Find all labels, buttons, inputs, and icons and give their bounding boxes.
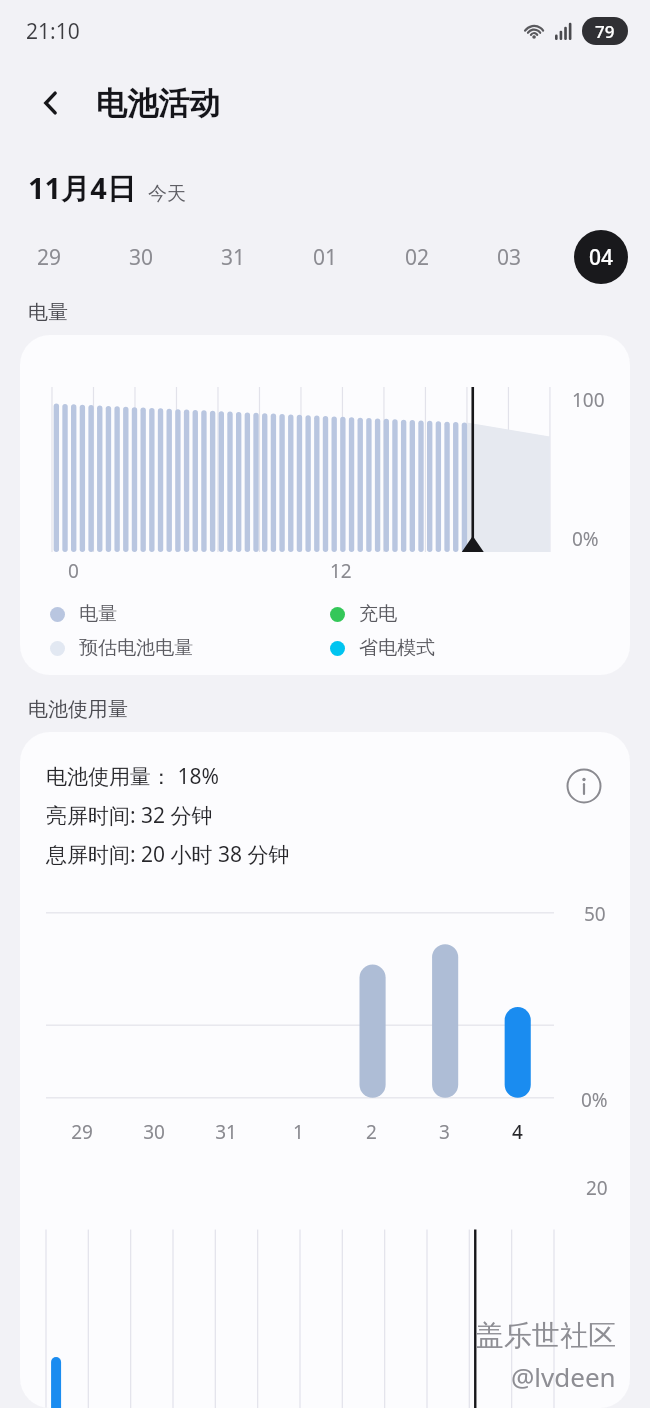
staticText: 31 [221,243,246,272]
staticText: 31 [215,1119,237,1145]
staticText: 4 [512,1119,523,1145]
staticText: 息屏时间: 20 小时 38 分钟 [46,840,290,869]
button[interactable]: 100 [20,335,630,675]
staticText: 29 [37,243,62,272]
staticText: 04 [589,243,614,272]
staticText: 02 [405,243,430,272]
staticText: @lvdeen [511,1359,616,1394]
staticText: 30 [129,243,154,272]
button[interactable]: 02 [390,230,444,284]
staticText: 29 [71,1119,93,1145]
staticText: 03 [497,243,522,272]
staticText: 79 [595,20,615,43]
button[interactable]: 01 [298,230,352,284]
staticText: 3 [439,1119,450,1145]
button[interactable]: 29 [22,230,76,284]
staticText: 今天 [148,182,186,206]
staticText: 11月4日 [28,168,136,208]
staticText: 01 [313,243,338,272]
staticText: 电量 [28,300,68,325]
staticText: 100 [572,387,605,413]
button[interactable]: Info [560,762,608,810]
staticText: 0 [68,558,79,584]
staticText: 2 [366,1119,377,1145]
staticText: 电池活动 [96,84,220,123]
button[interactable]: Back [24,76,78,130]
staticText: 预估电池电量 [79,636,193,660]
staticText: 盖乐世社区 [476,1318,616,1353]
staticText: 30 [143,1119,165,1145]
staticText: 亮屏时间: 32 分钟 [46,801,213,830]
staticText: 电池使用量 [28,697,128,722]
staticText: 50 [584,901,606,927]
staticText: 0% [581,1087,608,1113]
button[interactable]: 30 [114,230,168,284]
staticText: 20 [586,1175,608,1201]
button[interactable]: 03 [482,230,536,284]
button[interactable]: 31 [206,230,260,284]
button[interactable]: 04 [574,230,628,284]
staticText: 电量 [79,602,117,626]
staticText: 0% [572,526,599,552]
staticText: 21:10 [26,17,80,46]
staticText: 省电模式 [359,636,435,660]
staticText: 1 [293,1119,304,1145]
staticText: 充电 [359,602,397,626]
staticText: 电池使用量： 18% [46,762,219,791]
staticText: 12 [330,558,352,584]
